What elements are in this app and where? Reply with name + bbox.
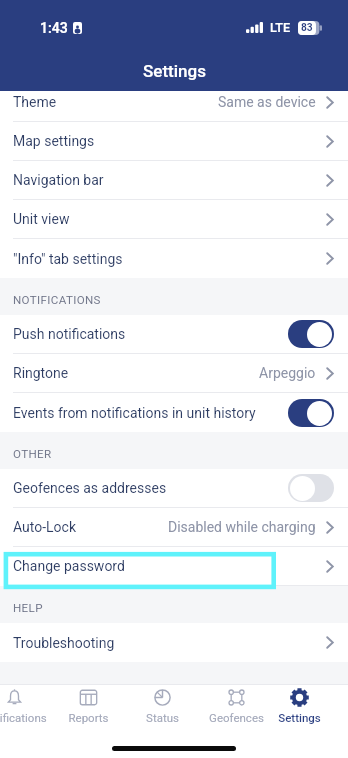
button[interactable]: Geofences as addresses <box>0 469 348 507</box>
staticText: 1:43 <box>40 20 68 36</box>
staticText: Push notifications <box>13 326 126 342</box>
button[interactable]: Push notifications <box>0 315 348 353</box>
staticText: Navigation bar <box>13 172 104 188</box>
button[interactable]: Toggle on <box>288 320 334 348</box>
staticText: Geofences as addresses <box>13 480 167 496</box>
staticText: Disabled while charging <box>168 519 316 535</box>
staticText: Status <box>146 711 179 724</box>
staticText: Reports <box>68 711 109 724</box>
staticText: "Info" tab settings <box>13 251 123 267</box>
button[interactable]: Unit view <box>0 200 348 238</box>
staticText: Ringtone <box>13 365 69 381</box>
staticText: HELP <box>13 601 43 615</box>
staticText: Theme <box>13 94 57 110</box>
button[interactable]: Toggle off <box>288 474 334 502</box>
button[interactable]: "Info" tab settings <box>0 239 348 278</box>
button[interactable]: Reports <box>51 687 125 724</box>
staticText: LTE <box>270 20 291 35</box>
button[interactable]: Navigation bar <box>0 161 348 199</box>
staticText: Same as device <box>218 94 316 110</box>
button[interactable]: Status <box>125 687 199 724</box>
staticText: Settings <box>143 61 206 81</box>
staticText: Unit view <box>13 211 70 227</box>
staticText: OTHER <box>13 447 52 461</box>
staticText: Map settings <box>13 133 95 149</box>
staticText: Events from notifications in unit histor… <box>13 405 256 421</box>
staticText: Geofences <box>209 711 264 724</box>
button[interactable]: Map settings <box>0 122 348 160</box>
button[interactable]: Settings <box>273 687 325 724</box>
staticText: Notifications <box>0 711 47 724</box>
button[interactable]: Geofences <box>199 687 273 724</box>
button[interactable]: Ringtone <box>0 354 348 392</box>
staticText: Settings <box>278 711 321 724</box>
staticText: Troubleshooting <box>13 635 115 651</box>
staticText: Change password <box>13 558 125 574</box>
button[interactable]: Change password <box>0 547 348 585</box>
button[interactable]: Toggle on <box>288 399 334 427</box>
staticText: Auto-Lock <box>13 519 77 535</box>
button[interactable]: Events from notifications in unit histor… <box>0 393 348 432</box>
button[interactable]: Notifications <box>0 687 51 724</box>
staticText: Arpeggio <box>259 365 316 381</box>
staticText: NOTIFICATIONS <box>13 293 101 307</box>
staticText: 83 <box>301 22 313 34</box>
button[interactable]: Auto-Lock <box>0 508 348 546</box>
button[interactable]: Troubleshooting <box>0 623 348 662</box>
button[interactable]: Theme <box>0 91 348 121</box>
